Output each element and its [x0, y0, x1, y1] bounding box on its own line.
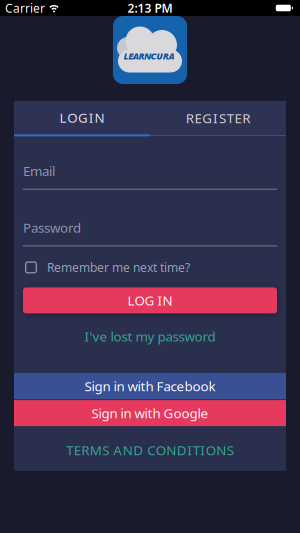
button[interactable]: TERMS AND CONDITIONS	[66, 441, 234, 459]
staticText: TERMS AND CONDITIONS	[66, 441, 234, 459]
button[interactable]: Remember me next time?	[23, 260, 190, 274]
staticText: LOG IN	[127, 292, 172, 309]
staticText: Email	[23, 162, 55, 180]
staticText: Sign in with Facebook	[84, 377, 215, 395]
staticText: 2:13 PM	[127, 0, 172, 16]
staticText: I've lost my password	[84, 327, 215, 345]
button[interactable]: I've lost my password	[84, 327, 215, 345]
button[interactable]: Sign in with Facebook	[14, 373, 286, 399]
staticText: Carrier	[5, 0, 45, 16]
button[interactable]: LOGIN	[14, 101, 150, 136]
staticText: LOGIN	[59, 109, 105, 126]
staticText: Sign in with Google	[91, 404, 208, 422]
button[interactable]: REGISTER	[150, 101, 286, 136]
staticText: REGISTER	[186, 109, 250, 127]
button[interactable]: LOG IN	[23, 287, 277, 313]
button[interactable]: Sign in with Google	[14, 400, 286, 426]
staticText: Password	[23, 219, 81, 236]
staticText: Remember me next time?	[47, 259, 190, 275]
staticText: LEARNCURA	[124, 50, 174, 62]
